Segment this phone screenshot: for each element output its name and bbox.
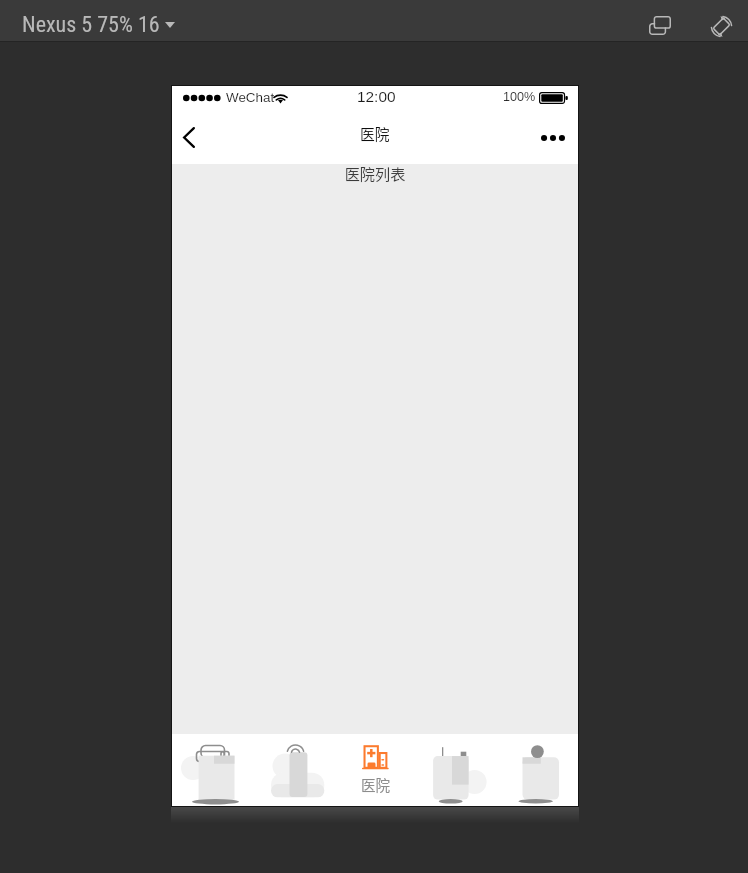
button[interactable]: More options <box>532 111 574 164</box>
staticText: 医院 <box>361 774 391 795</box>
button[interactable]: Back <box>172 111 205 164</box>
button[interactable]: Detach window <box>640 4 680 38</box>
button[interactable]: 医院 <box>335 734 416 806</box>
button[interactable]: Tab 5 <box>497 734 578 806</box>
button[interactable]: Nexus 5 75% 16 <box>22 12 175 38</box>
button[interactable]: Tab 1 <box>172 734 254 806</box>
staticText: 医院列表 <box>172 162 578 184</box>
staticText: 医院 <box>360 123 390 144</box>
staticText: 100% <box>503 90 536 104</box>
button[interactable]: Tab 2 <box>254 734 335 806</box>
button[interactable]: Tab 4 <box>416 734 497 806</box>
staticText: Nexus 5 75% 16 <box>22 12 160 38</box>
button[interactable]: Rotate device <box>702 4 742 38</box>
staticText: WeChat <box>226 90 275 105</box>
staticText: 12:00 <box>357 88 396 105</box>
